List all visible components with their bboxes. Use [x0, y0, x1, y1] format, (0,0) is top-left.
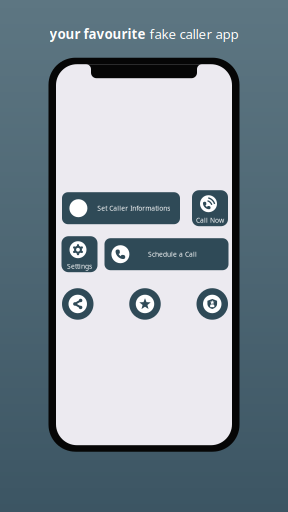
staticText: Set Caller Informations — [97, 204, 170, 213]
button[interactable]: Schedule a Call — [104, 238, 228, 270]
button[interactable]: Share — [62, 288, 93, 320]
button[interactable]: Set Caller Informations — [62, 192, 180, 224]
staticText: Settings — [67, 262, 92, 271]
staticText: Schedule a Call — [148, 250, 197, 259]
button[interactable]: Call Now — [192, 190, 228, 226]
staticText: your favourite — [49, 25, 145, 43]
button[interactable]: Rate the app — [129, 288, 161, 320]
button[interactable]: Settings — [61, 236, 97, 272]
staticText: Call Now — [196, 216, 224, 225]
button[interactable]: Privacy policy — [196, 288, 228, 320]
staticText: fake caller app — [149, 25, 238, 43]
